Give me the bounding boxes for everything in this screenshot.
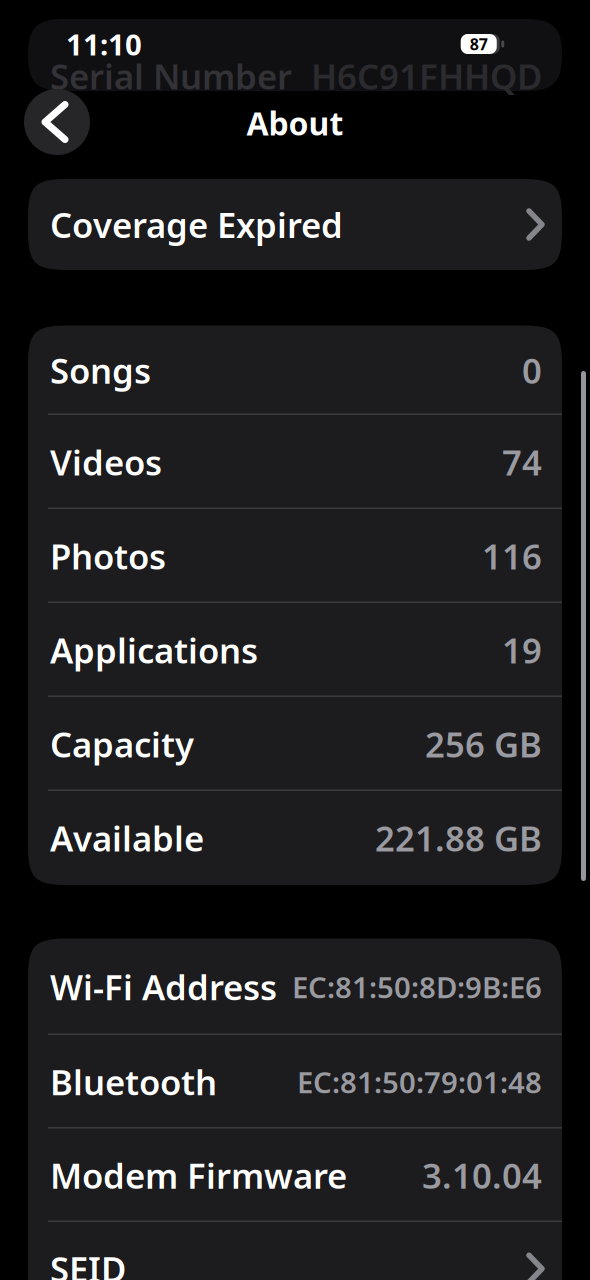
staticText: 3.10.04 — [422, 1152, 542, 1198]
staticText: 116 — [482, 533, 542, 579]
button[interactable]: SEID — [28, 1222, 562, 1280]
staticText: EC:81:50:79:01:48 — [297, 1062, 542, 1101]
staticText: 221.88 GB — [375, 815, 542, 861]
staticText: Wi-Fi Address — [50, 964, 277, 1010]
staticText: Capacity — [50, 721, 194, 767]
staticText: EC:81:50:8D:9B:E6 — [292, 967, 542, 1006]
staticText: 0 — [522, 347, 542, 393]
button[interactable]: Back — [24, 89, 90, 155]
staticText: Photos — [50, 533, 166, 579]
staticText: Bluetooth — [50, 1059, 217, 1105]
staticText: Coverage Expired — [50, 201, 343, 247]
staticText: Modem Firmware — [50, 1152, 347, 1198]
staticText: 74 — [502, 439, 542, 485]
staticText: H6C91FHHQD — [311, 53, 542, 99]
staticText: Songs — [50, 347, 151, 393]
staticText: Videos — [50, 439, 162, 485]
staticText: Available — [50, 815, 204, 861]
staticText: 256 GB — [425, 721, 542, 767]
staticText: SEID — [50, 1246, 126, 1280]
staticText: Serial Number — [50, 53, 292, 99]
button[interactable]: Coverage Expired — [28, 179, 562, 270]
staticText: About — [246, 102, 343, 144]
staticText: 87 — [470, 33, 488, 55]
staticText: 19 — [502, 627, 542, 673]
staticText: 11:10 — [66, 24, 142, 63]
staticText: Applications — [50, 627, 258, 673]
